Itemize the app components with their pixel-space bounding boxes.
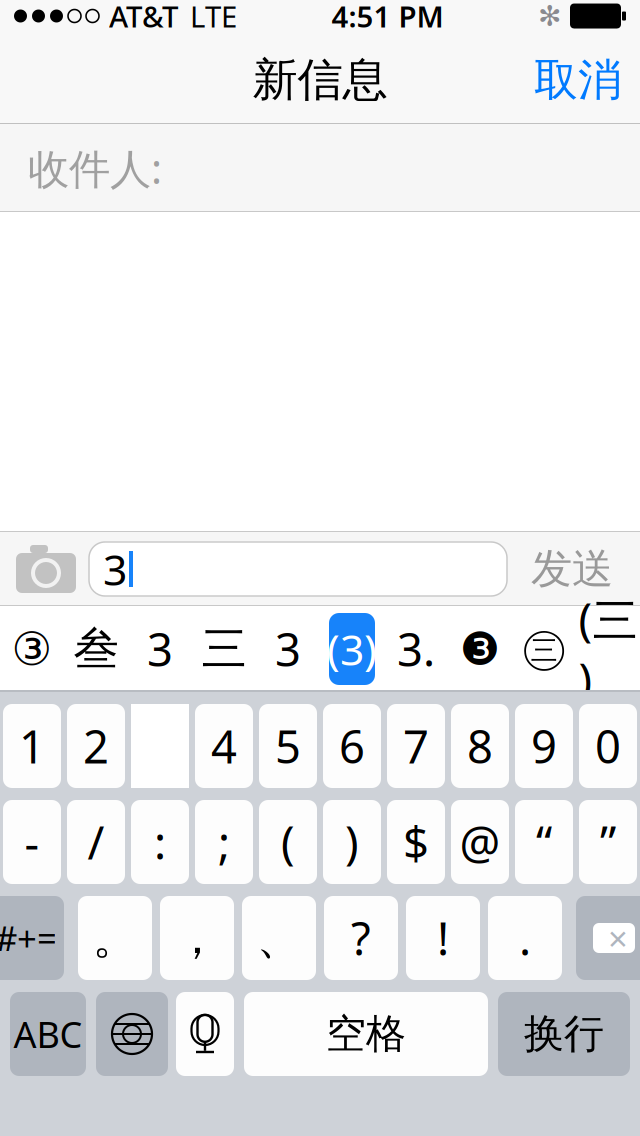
staticText: ; [218,812,230,872]
button[interactable]: 4 [195,704,253,788]
button[interactable]: ❸ [448,606,512,692]
staticText: ✻ [538,0,561,32]
button[interactable]: “ [515,800,573,884]
button[interactable]: 、 [242,896,316,980]
button[interactable]: 3 [256,606,320,692]
staticText: 0 [595,716,621,776]
button[interactable]: 8 [451,704,509,788]
staticText: @ [459,812,500,872]
button[interactable]: Dictation [176,992,234,1076]
button[interactable]: 取消 [534,39,640,121]
staticText: 3 [275,619,301,679]
staticText: (3) [327,621,377,677]
staticText: $ [403,812,429,872]
staticText: : [154,812,166,872]
staticText: AT&T [109,0,178,35]
staticText: 7 [403,716,429,776]
staticText: 8 [467,716,493,776]
staticText: ” [600,812,616,872]
button[interactable]: 叁 [64,606,128,692]
button[interactable]: ” [579,800,637,884]
button[interactable]: $ [387,800,445,884]
staticText: 6 [339,716,365,776]
staticText: ABC [13,1010,82,1058]
staticText: 新信息 [252,52,387,108]
staticText: “ [536,812,552,872]
button[interactable]: 空格 [244,992,488,1076]
staticText: LTE [190,0,237,35]
button[interactable]: (3) [320,606,384,692]
staticText: ( [281,812,295,872]
button[interactable]: 换行 [498,992,630,1076]
button[interactable]: . [488,896,562,980]
staticText: ! [437,908,449,968]
button[interactable]: Camera [3,533,89,605]
button[interactable]: 0 [579,704,637,788]
staticText: / [87,812,104,872]
staticText: . [519,908,531,968]
button[interactable]: 收件人: [0,124,640,212]
staticText: 4:51 PM [331,0,443,35]
staticText: 2 [83,716,109,776]
staticText: #+= [0,915,57,961]
staticText: (三) [578,589,637,709]
button[interactable]: ) [323,800,381,884]
staticText: 3 [103,541,127,597]
staticText: ③ [11,623,52,675]
button[interactable]: / [67,800,125,884]
staticText: ， [174,910,219,966]
button[interactable]: - [3,800,61,884]
staticText: - [24,812,39,872]
button[interactable]: 3 [128,606,192,692]
button[interactable]: #+= [0,896,64,980]
button[interactable]: 9 [515,704,573,788]
staticText: 取消 [534,53,622,107]
button[interactable]: 6 [323,704,381,788]
staticText: 收件人: [28,141,162,195]
staticText: ❸ [459,623,500,675]
staticText: 叁 [73,621,118,677]
button[interactable]: ( [259,800,317,884]
staticText: × [608,915,628,961]
button[interactable]: Next keyboard [96,992,168,1076]
staticText: 三 [201,621,246,677]
staticText: 换行 [524,1009,604,1058]
staticText: 3 [147,619,173,679]
staticText: 9 [531,716,557,776]
button[interactable]: 5 [259,704,317,788]
staticText: 4 [211,716,237,776]
button[interactable]: 3. [384,606,448,692]
staticText: ) [345,812,359,872]
button[interactable]: ABC [10,992,86,1076]
button[interactable]: 1 [3,704,61,788]
staticText: 空格 [326,1009,406,1058]
button[interactable]: ! [406,896,480,980]
button[interactable]: 三 [192,606,256,692]
button[interactable]: ? [324,896,398,980]
button[interactable]: @ [451,800,509,884]
button[interactable]: 7 [387,704,445,788]
button[interactable]: 发送 [507,533,637,605]
button[interactable]: ㊂ [512,606,576,692]
staticText: 3. [397,619,435,679]
staticText: 发送 [531,544,613,594]
button[interactable]: ; [195,800,253,884]
staticText: 、 [256,910,301,966]
staticText: ? [351,908,371,968]
button[interactable]: : [131,800,189,884]
button[interactable]: ， [160,896,234,980]
staticText: ㊂ [521,621,566,677]
button[interactable]: 。 [78,896,152,980]
staticText: 5 [275,716,301,776]
staticText: 。 [92,910,137,966]
button[interactable]: ③ [0,606,64,692]
button[interactable]: 2 [67,704,125,788]
button[interactable]: Delete [576,896,640,980]
button[interactable]: (三) [576,606,640,692]
staticText: 1 [19,716,45,776]
